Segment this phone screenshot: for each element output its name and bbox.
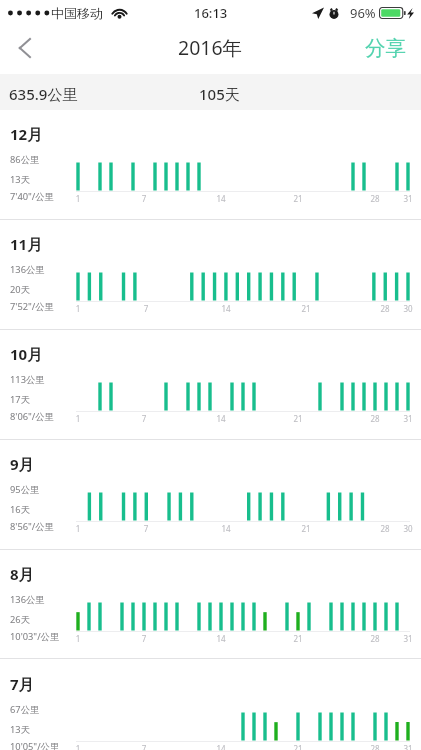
staticText: 7'52"/公里 xyxy=(10,300,54,313)
staticText: 分享 xyxy=(365,35,406,61)
staticText: 31 xyxy=(400,743,416,750)
staticText: 14 xyxy=(213,633,229,644)
staticText: 7 xyxy=(136,413,152,424)
staticText: 1 xyxy=(70,633,86,644)
staticText: 95公里 xyxy=(10,483,40,496)
staticText: 1 xyxy=(70,193,86,204)
staticText: 7 xyxy=(136,193,152,204)
staticText: 8月 xyxy=(10,564,34,584)
staticText: 11月 xyxy=(10,234,43,254)
staticText: 7'40"/公里 xyxy=(10,190,54,203)
staticText: 21 xyxy=(298,303,314,314)
staticText: 7 xyxy=(136,633,152,644)
staticText: 1 xyxy=(70,743,86,750)
staticText: 28 xyxy=(367,743,383,750)
staticText: 26天 xyxy=(10,613,30,626)
staticText: 28 xyxy=(377,303,393,314)
staticText: 113公里 xyxy=(10,373,45,386)
staticText: 10'03"/公里 xyxy=(10,630,60,643)
staticText: 中国移动 xyxy=(51,5,103,21)
staticText: 13天 xyxy=(10,723,30,736)
staticText: 21 xyxy=(290,193,306,204)
button[interactable]: 10月 xyxy=(0,332,421,441)
button[interactable]: 12月 xyxy=(0,112,421,221)
staticText: 7 xyxy=(138,303,154,314)
staticText: 86公里 xyxy=(10,153,40,166)
staticText: 8'06"/公里 xyxy=(10,410,54,423)
staticText: 21 xyxy=(298,523,314,534)
staticText: 8'56"/公里 xyxy=(10,520,54,533)
staticText: 136公里 xyxy=(10,263,45,276)
staticText: 14 xyxy=(213,743,229,750)
staticText: 1 xyxy=(70,413,86,424)
staticText: 1 xyxy=(70,303,86,314)
staticText: 14 xyxy=(218,303,234,314)
staticText: 9月 xyxy=(10,454,34,474)
staticText: 96% xyxy=(350,4,376,22)
staticText: 21 xyxy=(290,633,306,644)
staticText: 7 xyxy=(136,743,152,750)
staticText: 1 xyxy=(70,523,86,534)
staticText: 28 xyxy=(367,413,383,424)
staticText: 7月 xyxy=(10,674,34,694)
staticText: 635.9公里 xyxy=(9,84,78,104)
staticText: 2016年 xyxy=(178,34,243,61)
button[interactable]: 8月 xyxy=(0,552,421,661)
button[interactable]: 9月 xyxy=(0,442,421,551)
staticText: 31 xyxy=(400,413,416,424)
staticText: 31 xyxy=(400,633,416,644)
button[interactable]: 7月 xyxy=(0,662,421,750)
staticText: 28 xyxy=(367,193,383,204)
staticText: 7 xyxy=(138,523,154,534)
staticText: 17天 xyxy=(10,393,30,406)
staticText: 16天 xyxy=(10,503,30,516)
staticText: 14 xyxy=(213,413,229,424)
staticText: 13天 xyxy=(10,173,30,186)
button[interactable]: 11月 xyxy=(0,222,421,331)
staticText: 10'05"/公里 xyxy=(10,740,60,750)
staticText: 21 xyxy=(290,413,306,424)
staticText: 28 xyxy=(377,523,393,534)
staticText: 67公里 xyxy=(10,703,40,716)
staticText: 31 xyxy=(400,193,416,204)
staticText: 21 xyxy=(290,743,306,750)
staticText: 105天 xyxy=(199,84,240,104)
staticText: 30 xyxy=(400,303,416,314)
staticText: 30 xyxy=(400,523,416,534)
button[interactable]: 分享 xyxy=(351,25,421,74)
staticText: 14 xyxy=(218,523,234,534)
staticText: 28 xyxy=(367,633,383,644)
staticText: 136公里 xyxy=(10,593,45,606)
staticText: 20天 xyxy=(10,283,30,296)
staticText: 16:13 xyxy=(194,4,228,22)
staticText: 12月 xyxy=(10,124,43,144)
staticText: 14 xyxy=(213,193,229,204)
button[interactable]: Back xyxy=(0,25,44,74)
staticText: 10月 xyxy=(10,344,43,364)
